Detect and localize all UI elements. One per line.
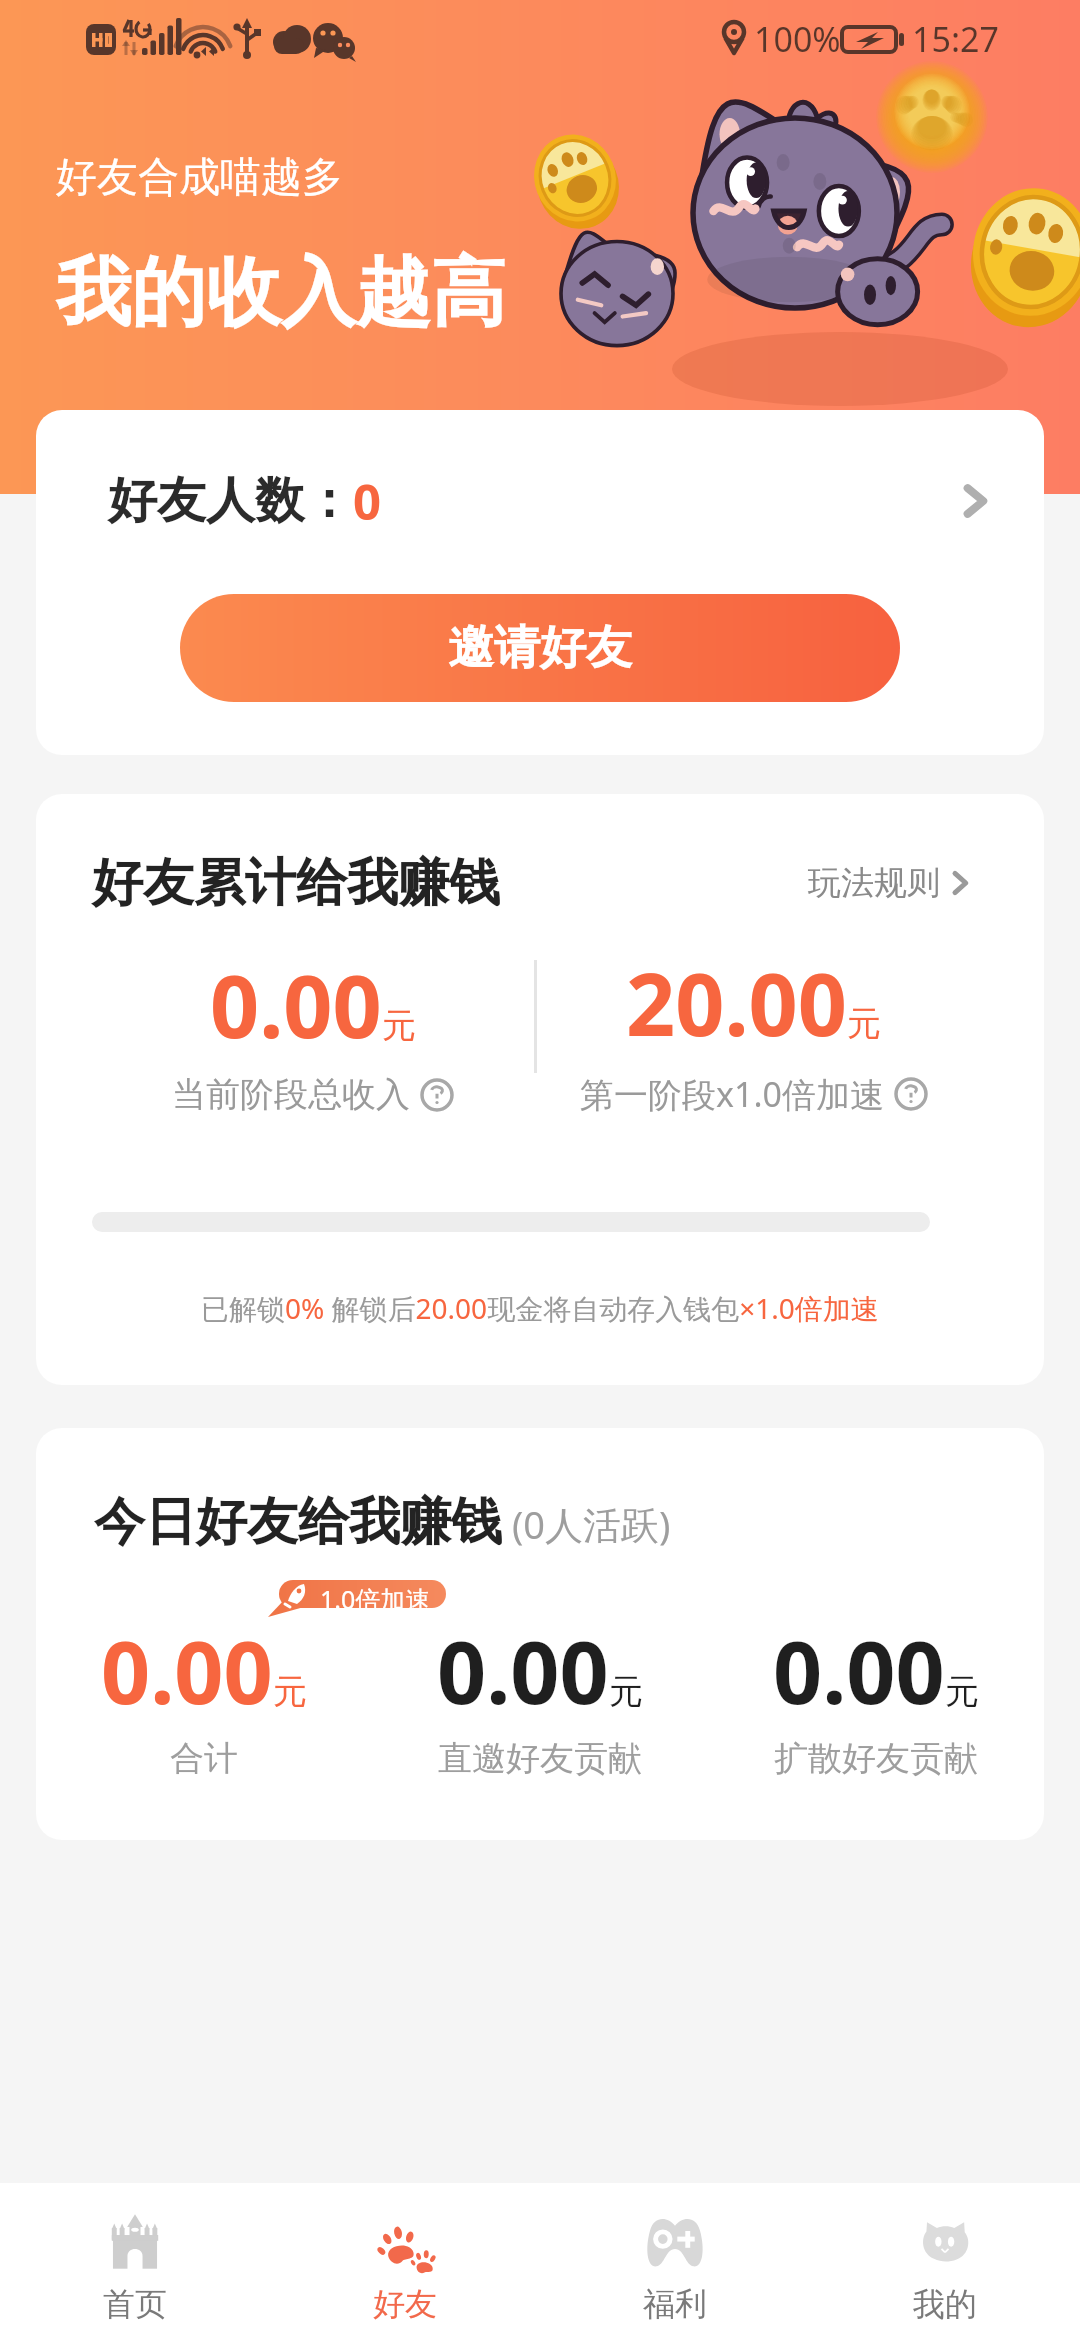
staticText: 已解锁0% 解锁后20.00现金将自动存入钱包×1.0倍加速	[201, 1289, 879, 1327]
staticText: 我的收入越高	[56, 246, 506, 340]
staticText: 元	[382, 1004, 416, 1047]
button[interactable]: 我的	[810, 2183, 1080, 2324]
staticText: 当前阶段总收入	[172, 1073, 410, 1116]
other: 好友	[376, 2213, 434, 2271]
staticText: 好友合成喵越多	[56, 152, 343, 204]
staticText: 元	[609, 1670, 643, 1713]
staticText: 今日好友给我赚钱	[94, 1490, 502, 1554]
button[interactable]: 福利	[540, 2183, 810, 2324]
other: 福利	[646, 2213, 704, 2271]
staticText: 100%	[754, 16, 841, 62]
other: 首页	[106, 2213, 164, 2271]
staticText: 元	[945, 1670, 979, 1713]
staticText: 我的	[913, 2284, 977, 2324]
staticText: 扩散好友贡献	[774, 1737, 978, 1780]
staticText: 元	[847, 1002, 881, 1045]
staticText: 0.00	[210, 946, 382, 1063]
staticText: 合计	[170, 1737, 238, 1780]
button[interactable]: 玩法规则	[808, 862, 976, 904]
staticText: 15:27	[912, 16, 999, 62]
staticText: 0	[353, 468, 382, 535]
staticText: 福利	[643, 2284, 707, 2324]
button[interactable]: 好友人数：	[36, 410, 1044, 592]
staticText: 好友人数：	[108, 470, 353, 532]
button[interactable]: 邀请好友	[180, 594, 900, 702]
staticText: 邀请好友	[448, 619, 632, 677]
staticText: 第一阶段x1.0倍加速	[580, 1071, 884, 1117]
staticText: 好友累计给我赚钱	[92, 851, 500, 915]
staticText: 0.00	[437, 1612, 609, 1729]
other: 我的	[916, 2213, 974, 2271]
staticText: 1.0倍加速	[320, 1582, 431, 1616]
staticText: 首页	[103, 2284, 167, 2324]
staticText: 玩法规则	[808, 862, 940, 904]
staticText: (0人活跃)	[502, 1498, 671, 1550]
staticText: 元	[273, 1670, 307, 1713]
staticText: 20.00	[626, 944, 847, 1061]
staticText: 好友	[373, 2284, 437, 2324]
staticText: 0.00	[101, 1612, 273, 1729]
button[interactable]: 首页	[0, 2183, 270, 2324]
button[interactable]: 好友	[270, 2183, 540, 2324]
staticText: 直邀好友贡献	[438, 1737, 642, 1780]
staticText: 0.00	[773, 1612, 945, 1729]
